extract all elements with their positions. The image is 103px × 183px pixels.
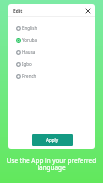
button[interactable]: Hausa <box>8 46 95 58</box>
button[interactable]: French <box>8 70 95 82</box>
staticText: Use the App in your preferred language <box>3 156 100 172</box>
button[interactable]: Apply <box>32 134 73 146</box>
staticText: Igbo <box>22 61 32 67</box>
button[interactable]: Igbo <box>8 58 95 70</box>
staticText: Edit <box>13 8 23 15</box>
staticText: Yoruba <box>22 37 37 43</box>
staticText: French <box>22 73 37 79</box>
button[interactable]: Yoruba <box>8 34 95 46</box>
button[interactable]: English <box>8 22 95 34</box>
staticText: Apply <box>46 137 59 143</box>
staticText: Hausa <box>22 49 36 55</box>
staticText: English <box>22 25 38 31</box>
button[interactable]: Close <box>81 4 94 17</box>
